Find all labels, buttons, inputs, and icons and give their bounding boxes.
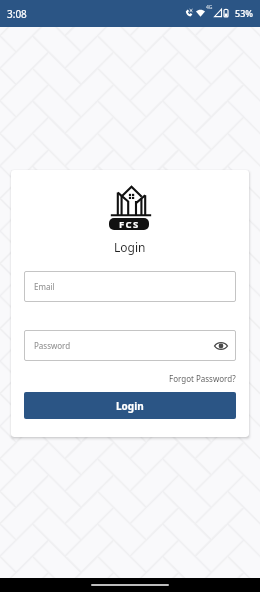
button[interactable]: Password	[24, 330, 236, 361]
staticText: 3:08	[7, 7, 27, 21]
button[interactable]: Email	[24, 271, 236, 302]
button[interactable]: Show password	[212, 337, 230, 355]
button[interactable]: Forgot Password?	[168, 370, 237, 387]
button[interactable]: Login	[24, 392, 236, 419]
staticText: Email	[34, 281, 55, 292]
staticText: FCS	[119, 218, 140, 230]
staticText: Password	[34, 340, 71, 351]
staticText: Login	[114, 239, 146, 255]
staticText: 53%	[235, 7, 253, 19]
staticText: 4G	[206, 4, 213, 11]
staticText: Login	[116, 399, 144, 413]
